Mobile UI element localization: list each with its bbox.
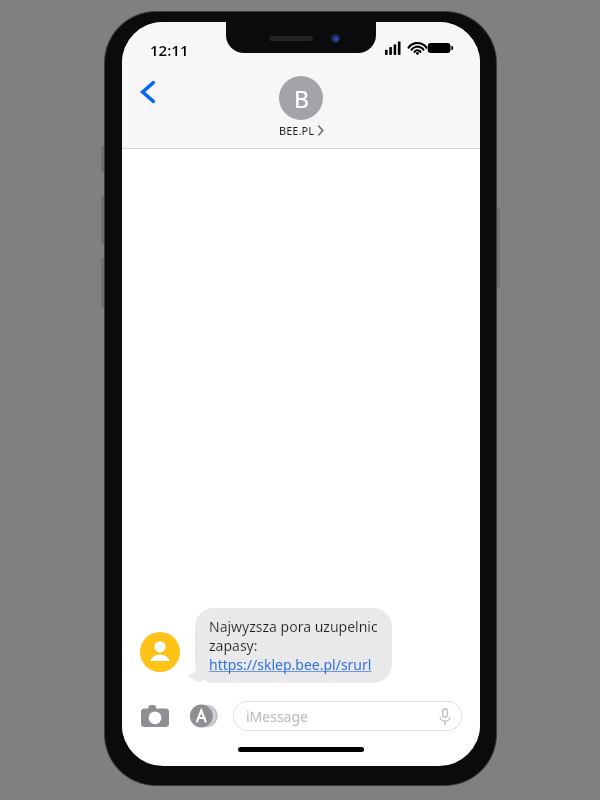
staticText: iMessage xyxy=(246,707,308,726)
staticText: B xyxy=(294,83,309,114)
staticText: 12:11 xyxy=(150,40,189,60)
staticText: zapasy: xyxy=(209,636,258,655)
staticText: BEE.PL xyxy=(279,123,315,138)
button[interactable]: Najwyzsza pora uzupelnic xyxy=(195,608,392,683)
button[interactable]: Apps xyxy=(187,700,219,732)
button[interactable]: Camera xyxy=(139,700,171,732)
staticText: Najwyzsza pora uzupelnic xyxy=(209,617,378,636)
button[interactable]: Dictate xyxy=(435,706,455,726)
button[interactable]: https://sklep.bee.pl/srurl xyxy=(209,655,372,674)
button[interactable]: B xyxy=(279,76,323,138)
button[interactable]: iMessage xyxy=(233,701,462,731)
button[interactable]: Back xyxy=(126,70,170,114)
